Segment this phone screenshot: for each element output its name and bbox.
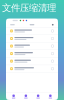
button[interactable] — [6, 27, 58, 35]
button[interactable]: Files — [20, 93, 32, 100]
staticText: 文件压缩清理 — [2, 2, 56, 14]
button[interactable] — [13, 19, 18, 22]
button[interactable]: Red filter — [22, 19, 24, 21]
button[interactable]: Tools — [32, 93, 44, 100]
button[interactable]: Blue filter — [25, 19, 27, 21]
button[interactable]: Home — [7, 93, 20, 100]
button[interactable]: Green filter — [19, 19, 21, 21]
button[interactable] — [6, 65, 58, 73]
button[interactable] — [6, 35, 58, 42]
button[interactable]: Me — [44, 93, 56, 100]
button[interactable] — [6, 50, 58, 57]
button[interactable]: Select all — [51, 23, 54, 26]
button[interactable] — [6, 57, 58, 65]
button[interactable] — [6, 42, 58, 50]
